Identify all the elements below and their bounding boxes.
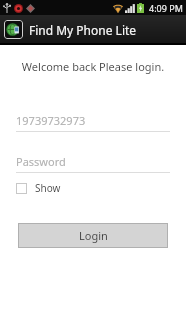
button[interactable]: 19739732973 <box>16 113 170 132</box>
staticText: Welcome back Please login. <box>8 59 178 74</box>
button[interactable]: Password <box>16 154 170 173</box>
button[interactable]: Show <box>16 181 61 195</box>
staticText: Find My Phone Lite <box>29 22 137 38</box>
staticText: Show <box>35 181 61 195</box>
staticText: Password <box>16 154 66 169</box>
staticText: 19739732973 <box>16 113 86 128</box>
staticText: 4:09 PM <box>149 2 183 14</box>
staticText: Login <box>79 228 108 243</box>
button[interactable]: Login <box>18 223 168 248</box>
